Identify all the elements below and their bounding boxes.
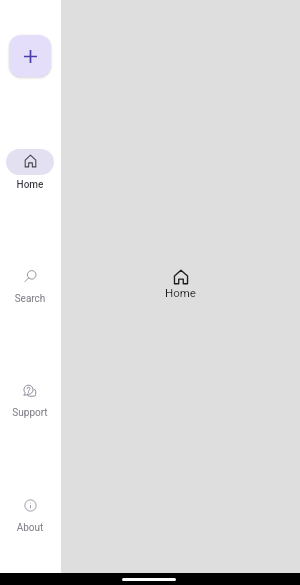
button[interactable]: Support <box>6 377 54 419</box>
staticText: Home <box>6 179 54 191</box>
button[interactable]: About <box>6 492 54 534</box>
button[interactable]: Home <box>6 149 54 191</box>
staticText: Search <box>6 293 54 305</box>
button[interactable]: Search <box>6 263 54 305</box>
staticText: About <box>6 522 54 534</box>
staticText: Support <box>6 407 54 419</box>
staticText: Home <box>165 286 196 299</box>
button[interactable]: Add <box>9 35 51 77</box>
